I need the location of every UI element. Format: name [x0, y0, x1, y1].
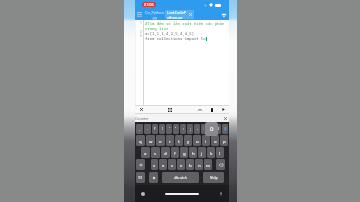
button[interactable]: : [180, 124, 186, 134]
button[interactable]: q [136, 135, 145, 146]
button[interactable]: e [156, 135, 165, 146]
staticText: ( [211, 127, 212, 131]
button[interactable]: LeetCodeP [165, 10, 194, 19]
button[interactable]: Counter [135, 114, 229, 122]
button[interactable]: x [159, 159, 167, 170]
staticText: l [219, 150, 221, 156]
button[interactable]: b [186, 159, 194, 170]
button[interactable]: . [144, 124, 151, 134]
button[interactable]: ? [152, 124, 158, 134]
button[interactable]: g [180, 147, 188, 158]
staticText: / [203, 127, 205, 131]
button[interactable]: k [207, 147, 215, 158]
staticText: d [164, 150, 167, 156]
button[interactable]: c [168, 159, 176, 170]
button[interactable]: !1$ [136, 172, 145, 183]
staticText: .py [152, 15, 158, 20]
button[interactable]: Co_Python [144, 9, 165, 20]
staticText: a [144, 150, 147, 156]
staticText: Co_Python [145, 10, 164, 15]
staticText: Nhập [210, 176, 218, 180]
button[interactable]: Stop [207, 106, 216, 113]
button[interactable]: i [202, 135, 210, 146]
button[interactable]: m [204, 159, 212, 170]
staticText: t [178, 138, 180, 144]
button[interactable]: z [151, 159, 158, 170]
button[interactable]: p [220, 135, 228, 146]
staticText: g [183, 150, 186, 156]
staticText: LeetCodeP [167, 10, 187, 15]
button[interactable]: Layout [165, 106, 174, 113]
staticText: Counter [135, 116, 149, 121]
staticText: , [139, 127, 140, 131]
button[interactable]: , [136, 124, 143, 134]
button[interactable]: u [193, 135, 201, 146]
staticText: y [187, 138, 190, 144]
button[interactable]: f [171, 147, 179, 158]
button[interactable]: Collapse [195, 106, 204, 113]
staticText: r [169, 138, 171, 144]
button[interactable]: ) [215, 124, 221, 134]
button[interactable]: s [151, 147, 160, 158]
staticText: ! [162, 127, 163, 131]
button[interactable]: ! [159, 124, 165, 134]
button[interactable]: @ [222, 124, 228, 134]
staticText: 2 [140, 30, 142, 34]
button[interactable]: h [189, 147, 197, 158]
button[interactable]: d [161, 147, 170, 158]
button[interactable]: l [216, 147, 224, 158]
staticText: h [192, 150, 195, 156]
button[interactable]: y [184, 135, 192, 146]
button[interactable]: ( [208, 124, 214, 134]
button[interactable]: a [141, 147, 150, 158]
staticText: z [153, 162, 156, 168]
button[interactable]: n [195, 159, 203, 170]
button[interactable]: - [194, 124, 200, 134]
button[interactable]: dấu cách [162, 172, 199, 183]
button[interactable]: Close [137, 106, 146, 113]
staticText: n [198, 162, 201, 168]
button[interactable]: Emoji [149, 172, 158, 183]
staticText: @ [224, 127, 227, 131]
staticText: q [139, 138, 142, 144]
staticText: u [196, 138, 199, 144]
button[interactable]: Backspace [216, 159, 225, 170]
staticText: ython.py [167, 15, 183, 19]
staticText: 3 [140, 34, 142, 38]
staticText: " [175, 127, 177, 131]
button[interactable]: ; [187, 124, 193, 134]
button[interactable]: Assistant [141, 192, 145, 196]
button[interactable]: r [166, 135, 174, 146]
button[interactable]: o [211, 135, 219, 146]
button[interactable]: Menu [135, 9, 144, 20]
button[interactable]: Sync [219, 9, 229, 20]
button[interactable]: j [198, 147, 206, 158]
staticText: . [147, 127, 148, 131]
button[interactable]: w [146, 135, 155, 146]
staticText: - [197, 127, 198, 131]
staticText: b [189, 162, 192, 168]
staticText: : [183, 127, 184, 131]
button[interactable]: ' [166, 124, 172, 134]
staticText: s [154, 150, 157, 156]
staticText: #Tìm đếm số lần xuất hiện các phần tử [145, 21, 229, 26]
button[interactable]: t [175, 135, 183, 146]
button[interactable]: Shift [136, 159, 145, 170]
staticText: v [180, 162, 183, 168]
staticText: ? [154, 127, 156, 131]
button[interactable]: v [177, 159, 185, 170]
button[interactable]: Voice input [218, 191, 223, 196]
staticText: dấu cách [174, 176, 187, 180]
staticText: 07:06 [144, 2, 154, 7]
button[interactable]: / [201, 124, 207, 134]
staticText: !1$ [138, 176, 143, 180]
staticText: ) [218, 127, 219, 131]
button[interactable]: Run [219, 106, 228, 113]
button[interactable]: Nhập [203, 172, 224, 183]
staticText: e [159, 138, 162, 144]
staticText: k [210, 150, 213, 156]
staticText: o [214, 138, 217, 144]
staticText: i [205, 138, 207, 144]
button[interactable]: " [173, 124, 179, 134]
button[interactable]: Home [165, 193, 199, 195]
